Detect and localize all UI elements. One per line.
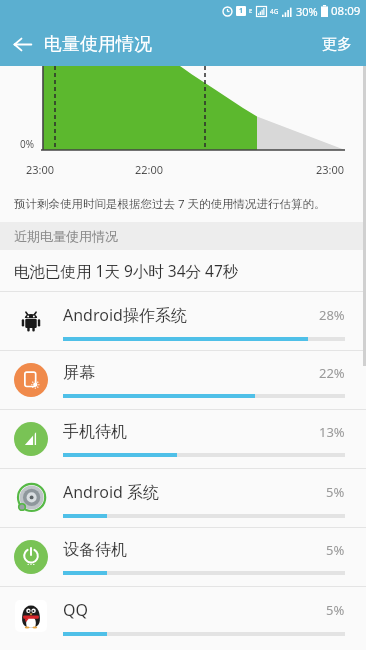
button[interactable]: 设备待机 <box>0 527 366 586</box>
button[interactable]: Android操作系统 <box>0 291 366 350</box>
staticText: 1 <box>239 6 244 16</box>
button[interactable]: 手机待机 <box>0 409 366 468</box>
button[interactable]: 屏幕 <box>0 350 366 409</box>
staticText: 手机待机 <box>63 422 127 442</box>
staticText: 设备待机 <box>63 540 127 560</box>
button[interactable]: 更多 <box>308 22 366 66</box>
staticText: 4G <box>270 7 279 16</box>
staticText: 电量使用情况 <box>44 33 152 56</box>
staticText: 23:00 <box>26 162 55 177</box>
staticText: Android操作系统 <box>63 304 187 326</box>
staticText: 08:09 <box>331 3 361 19</box>
button[interactable]: Back <box>0 22 44 66</box>
staticText: QQ <box>63 599 88 621</box>
staticText: 28% <box>319 306 345 324</box>
staticText: E <box>249 7 253 15</box>
staticText: 5% <box>326 601 345 619</box>
staticText: 5% <box>326 541 345 559</box>
staticText: 22:00 <box>135 162 164 177</box>
staticText: Android 系统 <box>63 481 160 503</box>
staticText: 5% <box>326 483 345 501</box>
staticText: 13% <box>319 423 345 441</box>
button[interactable]: QQ <box>0 586 366 645</box>
staticText: 近期电量使用情况 <box>14 228 118 244</box>
staticText: 屏幕 <box>63 363 95 383</box>
staticText: 30% <box>296 4 318 19</box>
staticText: 电池已使用 1天 9小时 34分 47秒 <box>14 260 239 281</box>
staticText: 预计剩余使用时间是根据您过去 7 天的使用情况进行估算的。 <box>14 196 326 212</box>
button[interactable]: Android 系统 <box>0 468 366 527</box>
staticText: 更多 <box>322 35 352 54</box>
staticText: 0% <box>20 137 35 151</box>
staticText: 22% <box>319 364 345 382</box>
staticText: 23:00 <box>316 162 345 177</box>
